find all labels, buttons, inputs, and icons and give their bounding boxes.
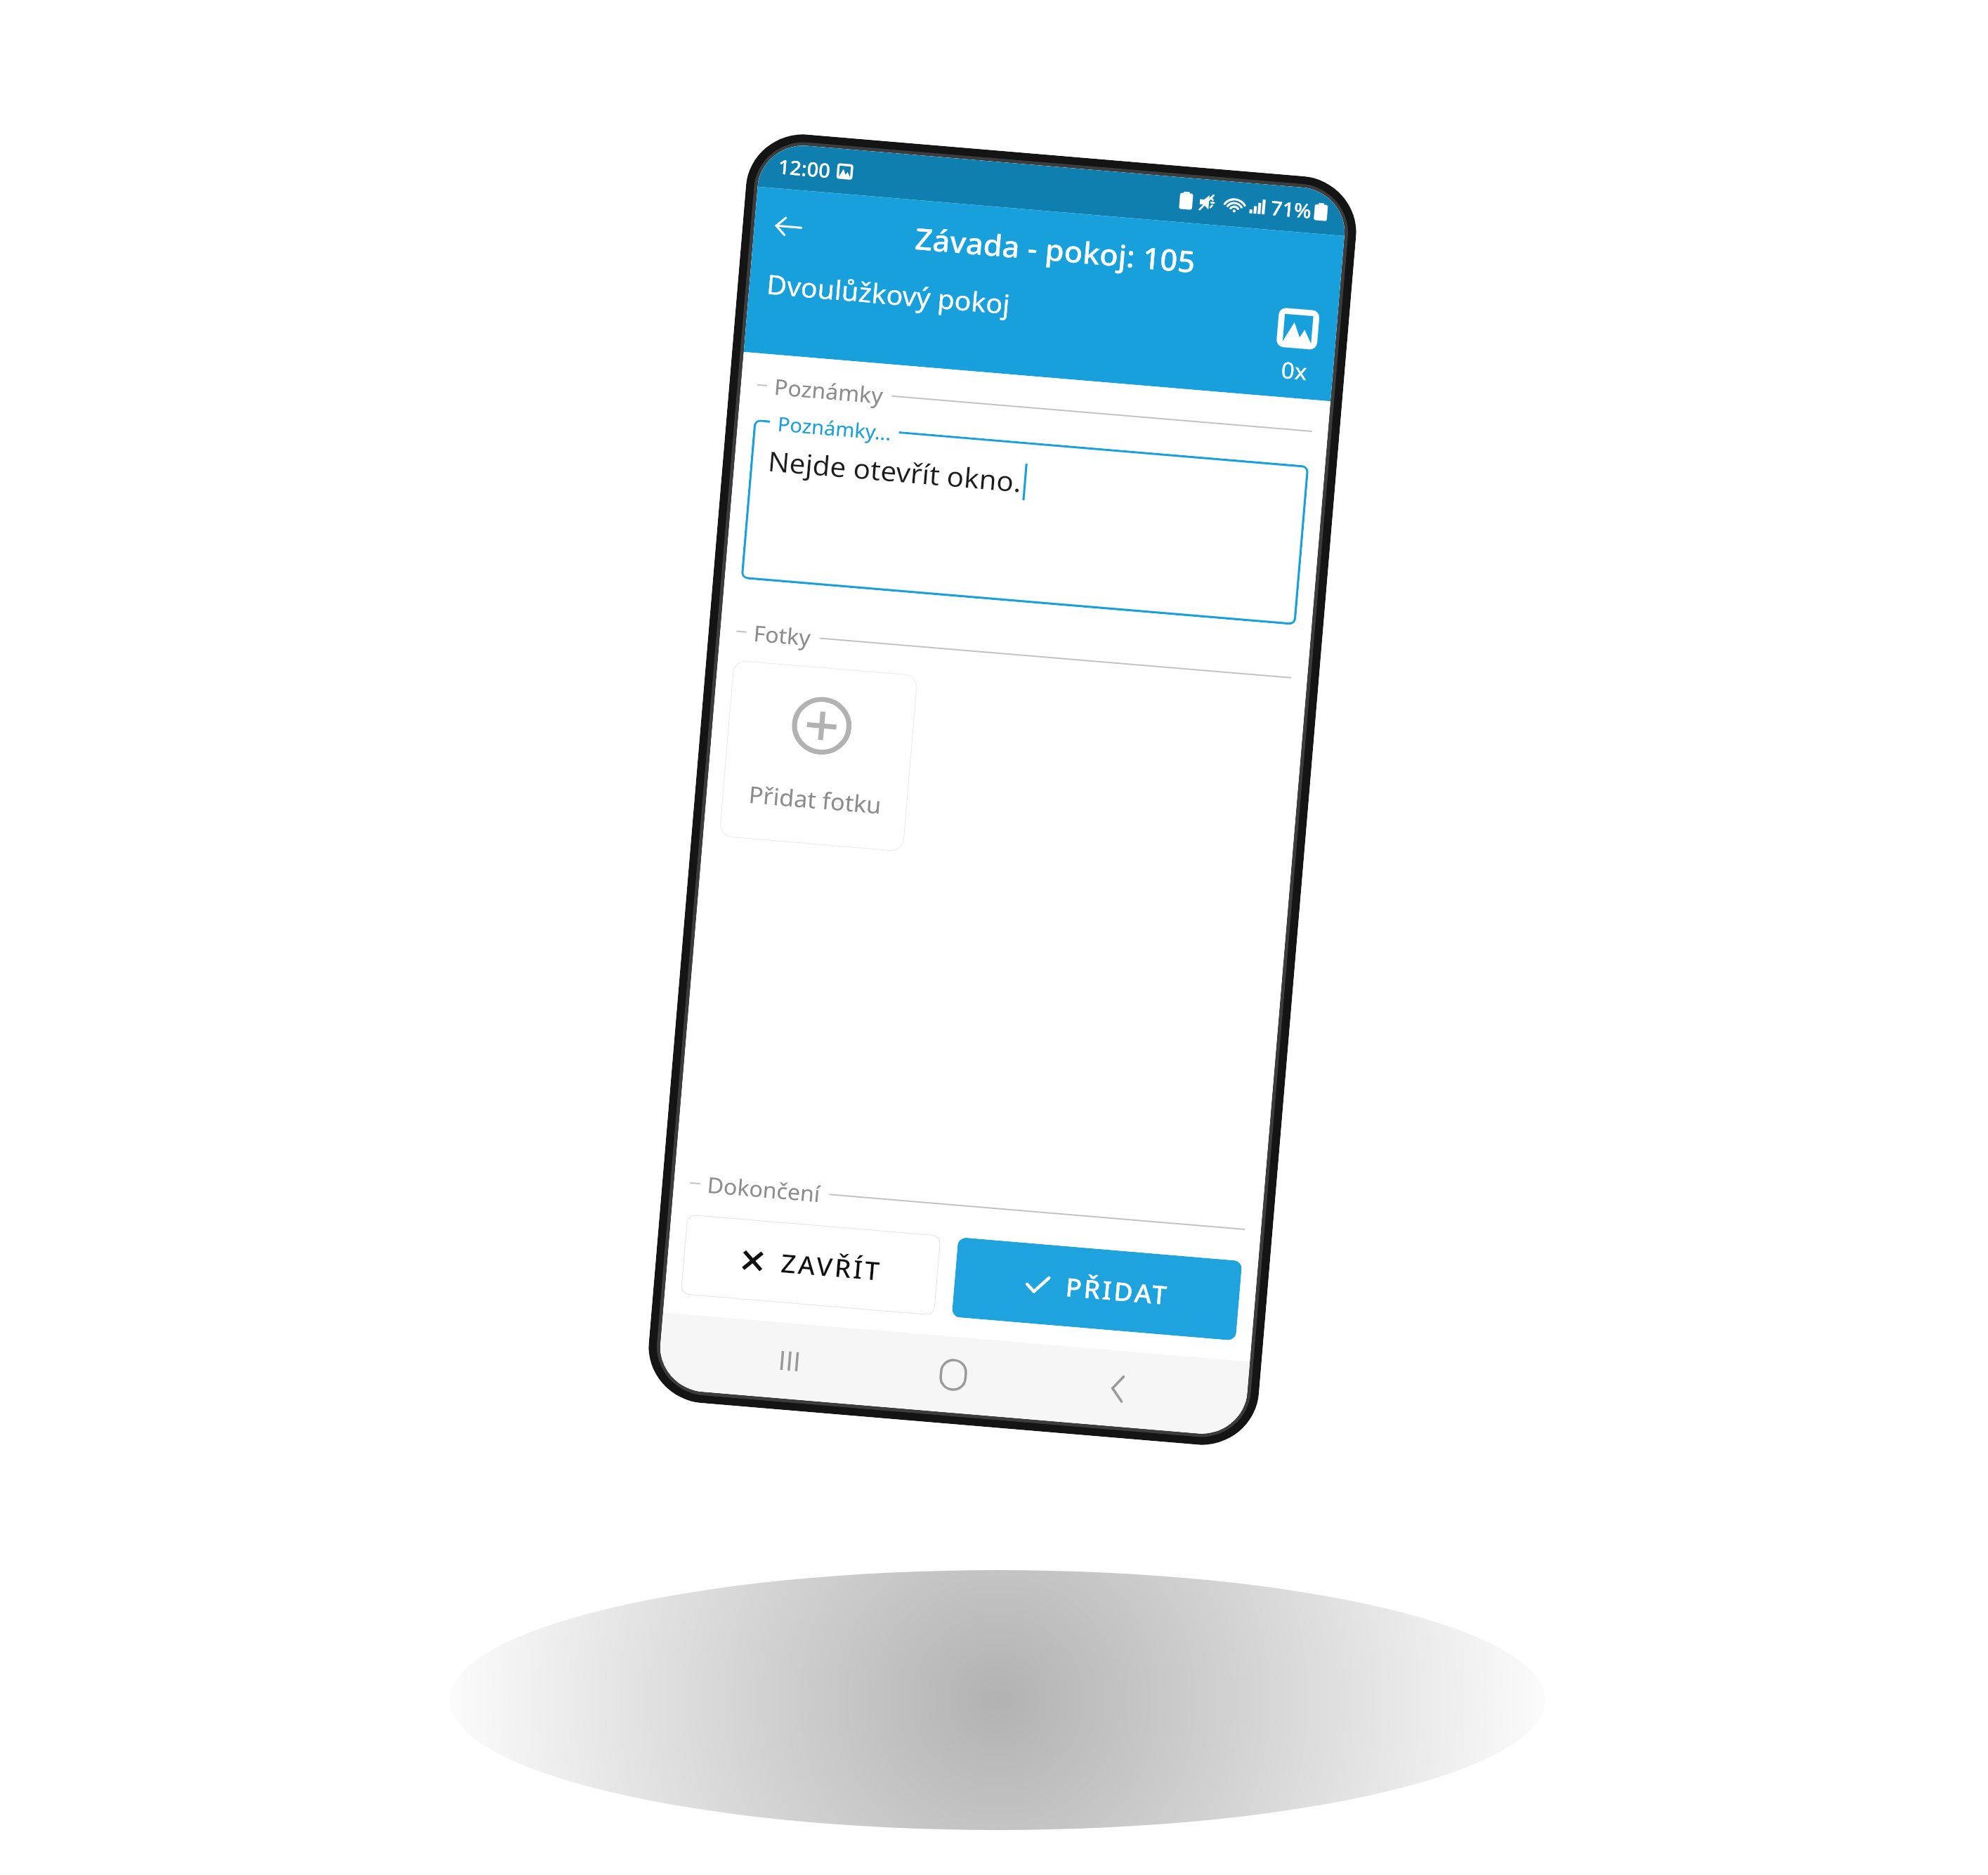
staticText: Dvoulůžkový pokoj	[765, 265, 1277, 344]
button[interactable]: Nejde otevřít okno.	[741, 419, 1309, 625]
staticText: Poznámky	[773, 372, 884, 410]
button[interactable]: ZAVŘÍT	[681, 1214, 941, 1315]
button[interactable]: Home	[916, 1338, 991, 1411]
staticText: ZAVŘÍT	[780, 1246, 883, 1288]
staticText: Fotky	[752, 618, 812, 652]
button[interactable]: PŘIDAT	[952, 1237, 1242, 1341]
staticText: Přidat fotku	[748, 778, 883, 821]
staticText: 0x	[1280, 354, 1309, 387]
staticText: Poznámky...	[777, 410, 893, 446]
button[interactable]: Photos	[1270, 305, 1322, 390]
staticText: Závada - pokoj: 105	[914, 218, 1197, 281]
button[interactable]: Back	[1080, 1352, 1155, 1425]
staticText: 12:00	[777, 153, 832, 184]
staticText: PŘIDAT	[1064, 1270, 1171, 1312]
button[interactable]: Back	[763, 202, 814, 252]
staticText: Nejde otevřít okno.	[767, 442, 1023, 500]
button[interactable]: Přidat fotku	[719, 660, 918, 852]
staticText: Dokončení	[706, 1170, 822, 1209]
staticText: 71%	[1270, 194, 1313, 224]
button[interactable]: Recent apps	[752, 1325, 827, 1398]
